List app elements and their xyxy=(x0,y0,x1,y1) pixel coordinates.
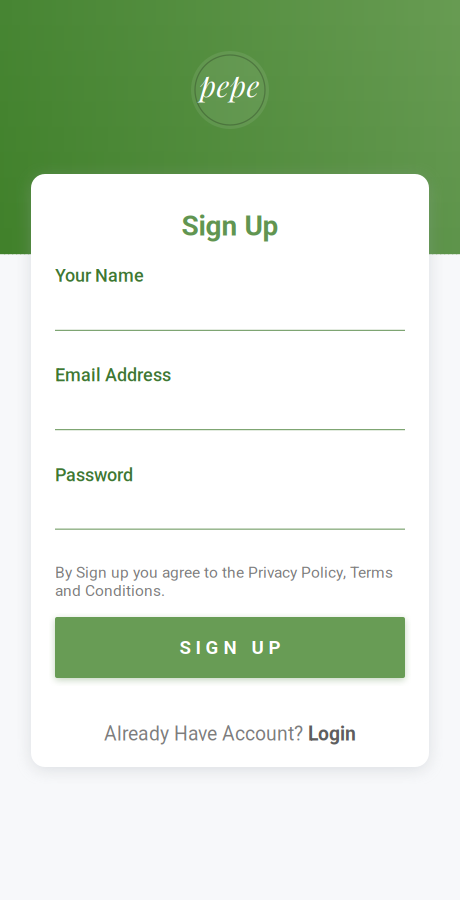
staticText: By Sign up you agree to the Privacy Poli… xyxy=(55,563,393,600)
staticText: Email Address xyxy=(55,364,171,386)
staticText: Login xyxy=(308,723,356,745)
staticText: Sign Up xyxy=(181,210,278,242)
staticText: Password xyxy=(55,464,133,486)
staticText: Already Have Account? xyxy=(104,723,303,745)
staticText: pepe xyxy=(199,65,259,105)
staticText: Your Name xyxy=(55,265,144,286)
staticText: S I G N U P xyxy=(179,637,280,658)
button[interactable]: S I G N U P xyxy=(55,617,405,678)
button[interactable]: Already Have Account? xyxy=(55,723,405,745)
